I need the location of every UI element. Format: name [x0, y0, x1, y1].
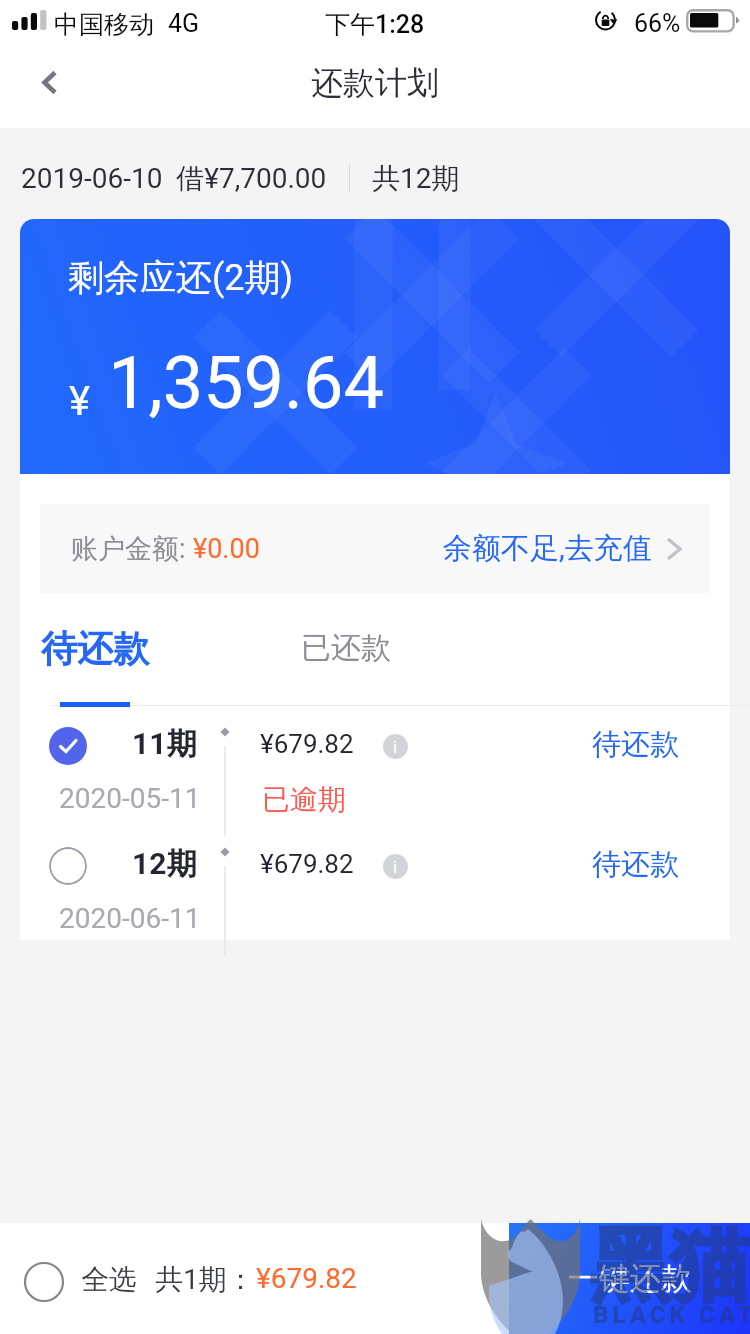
staticText: ¥0.00 — [193, 533, 260, 565]
staticText: 中国移动 — [54, 9, 154, 40]
staticText: 12期 — [132, 845, 197, 883]
button[interactable]: Selected — [20, 714, 730, 834]
button[interactable]: Info — [383, 854, 408, 879]
staticText: 66% — [634, 9, 681, 38]
staticText: 已还款 — [301, 629, 391, 667]
staticText: ¥679.82 — [260, 729, 354, 759]
staticText: 2020-05-11 — [59, 782, 201, 815]
button[interactable]: 一键还款 — [509, 1223, 750, 1334]
button[interactable]: Selected — [49, 727, 87, 765]
staticText: 账户金额: — [71, 532, 193, 566]
staticText: 共1期： — [155, 1262, 255, 1297]
button[interactable]: Select — [49, 847, 87, 885]
staticText: i — [393, 737, 398, 757]
button[interactable]: 账户金额: — [40, 504, 710, 593]
button[interactable]: Select — [20, 834, 730, 954]
button[interactable]: Back — [0, 50, 96, 128]
staticText: 待还款 — [41, 626, 149, 671]
staticText: 11期 — [132, 725, 197, 763]
staticText: 下午1:28 — [325, 9, 425, 40]
staticText: ¥679.82 — [256, 1262, 357, 1295]
staticText: 2020-06-11 — [59, 902, 201, 935]
staticText: 还款计划 — [311, 63, 439, 103]
staticText: 4G — [168, 9, 200, 38]
staticText: 待还款 — [592, 726, 679, 763]
button[interactable]: 待还款 — [21, 610, 169, 686]
staticText: 2019-06-10 借¥7,700.00 — [21, 161, 327, 196]
button[interactable]: 已还款 — [280, 610, 411, 686]
staticText: i — [393, 857, 398, 877]
button[interactable]: Select all — [16, 1254, 72, 1310]
staticText: BLACK CAT — [593, 1301, 750, 1329]
staticText: 1,359.64 — [108, 341, 384, 425]
staticText: 待还款 — [592, 846, 679, 883]
button[interactable]: Info — [383, 734, 408, 759]
staticText: 余额不足,去充值 — [443, 530, 652, 567]
staticText: 黑猫 — [590, 1216, 750, 1317]
staticText: 已逾期 — [262, 782, 346, 817]
staticText: 剩余应还(2期) — [68, 255, 294, 300]
staticText: 全选 — [81, 1262, 137, 1297]
staticText: 一键还款 — [568, 1259, 692, 1298]
staticText: ¥ — [69, 378, 91, 425]
staticText: 共12期 — [372, 161, 460, 196]
staticText: ¥679.82 — [260, 849, 354, 879]
